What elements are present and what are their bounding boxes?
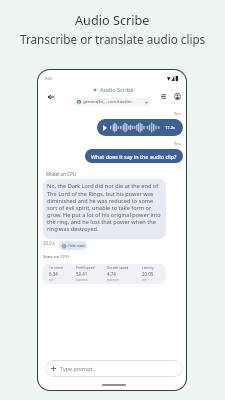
staticText: Hide stats [68, 243, 85, 248]
staticText: tokens/s [76, 278, 88, 282]
staticText: sec [142, 278, 147, 282]
staticText: Transcribe or translate audio clips [20, 31, 206, 47]
button[interactable]: No, the Dark Lord did not die at the end… [43, 179, 166, 239]
staticText: You [174, 111, 181, 116]
button[interactable]: What does it say in the audio clip? [85, 149, 183, 163]
button[interactable]: Model settings [157, 90, 170, 103]
staticText: What does it say in the audio clip? [91, 153, 177, 160]
staticText: Audio Scribe [75, 11, 150, 28]
button[interactable]: gemma3n_...mm.litertlm [74, 98, 151, 106]
staticText: You [174, 141, 181, 146]
staticText: 4.74 [107, 271, 116, 277]
staticText: 1st token [49, 266, 63, 270]
staticText: Stats on CPU [43, 253, 69, 259]
staticText: 6.34 [49, 271, 58, 277]
button[interactable]: Type prompt... [45, 360, 183, 377]
staticText: tokens/s [107, 278, 119, 282]
staticText: No, the Dark Lord did not die at the end… [47, 182, 162, 233]
staticText: Audio Scribe [100, 86, 134, 94]
staticText: Prefill speed [76, 266, 95, 270]
staticText: gemma3n_...mm.litertlm [83, 99, 132, 105]
staticText: 9:30 [45, 76, 52, 80]
button[interactable]: Back [44, 90, 57, 103]
staticText: Latency [142, 266, 154, 270]
staticText: 17.2s [165, 125, 175, 130]
button[interactable]: Account [171, 90, 184, 103]
button[interactable]: Play audio clip [97, 119, 183, 136]
staticText: 59.41 [76, 271, 88, 277]
staticText: Model on CPU [46, 171, 76, 177]
staticText: sec [49, 278, 54, 282]
staticText: Decode speed [107, 266, 129, 270]
staticText: Type prompt... [60, 365, 97, 372]
staticText: 20.05 [142, 271, 154, 277]
button[interactable]: Hide stats [59, 241, 87, 250]
staticText: 30.0 s [43, 240, 55, 246]
